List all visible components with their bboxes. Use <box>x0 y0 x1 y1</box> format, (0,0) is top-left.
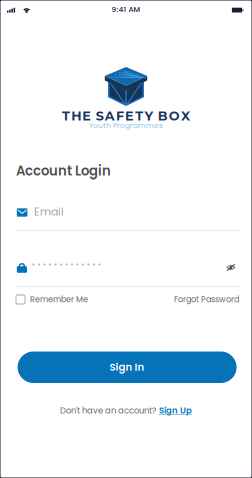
staticText: Forgot Password <box>174 294 239 305</box>
button[interactable]: Show password <box>220 258 242 276</box>
staticText: Don't have an account? <box>60 405 156 416</box>
staticText: F <box>116 108 124 124</box>
staticText: A <box>105 108 115 124</box>
staticText: Remember Me <box>30 294 88 305</box>
staticText: T <box>62 108 70 124</box>
button[interactable]: Forgot Password <box>159 292 239 307</box>
staticText: Email <box>34 204 64 219</box>
button[interactable]: Sign In <box>18 351 237 383</box>
button[interactable]: Don't have an account? <box>0 403 252 417</box>
staticText: B <box>158 108 168 124</box>
staticText: T <box>135 108 143 124</box>
staticText: Y <box>144 108 153 124</box>
staticText: Sign Up <box>159 405 192 416</box>
staticText: S <box>96 108 104 124</box>
staticText: X <box>181 108 190 124</box>
staticText: E <box>82 108 91 124</box>
staticText <box>92 108 94 124</box>
staticText: Youth Programmes <box>89 120 163 131</box>
staticText: E <box>125 108 134 124</box>
staticText: 9:41 AM <box>111 4 140 15</box>
staticText: Sign In <box>110 360 145 374</box>
staticText: O <box>169 108 180 124</box>
staticText: Account Login <box>16 162 111 180</box>
button[interactable]: Remember Me <box>16 292 106 307</box>
staticText: H <box>71 108 81 124</box>
